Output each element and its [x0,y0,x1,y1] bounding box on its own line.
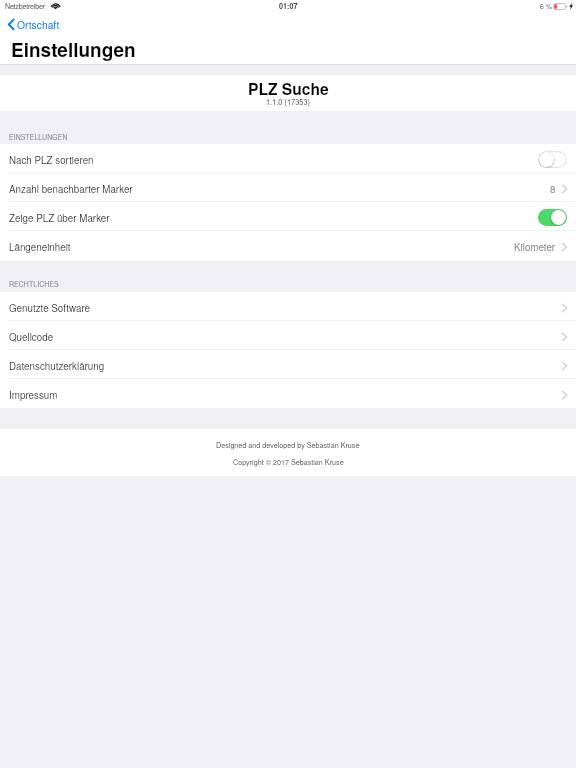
staticText: Datenschutzerklärung [9,359,105,373]
button[interactable]: Längeneinheit [0,231,576,260]
staticText: Zeige PLZ über Marker [9,211,110,225]
staticText: Designed and developed by Sebastian Krus… [216,440,360,450]
button[interactable]: Genutzte Software [0,292,576,321]
button[interactable]: Nach PLZ sortieren [0,144,576,173]
staticText: Copyright © 2017 Sebastian Kruse [233,457,344,467]
staticText: Quellcode [9,330,54,344]
staticText: 01:07 [279,1,298,11]
staticText: 1.1.0 (17353) [266,97,310,108]
staticText: Längeneinheit [9,240,71,254]
staticText: EINSTELLUNGEN [9,132,68,142]
staticText: RECHTLICHES [9,279,59,289]
staticText: Genutzte Software [9,301,90,315]
staticText: Kilometer [514,240,556,254]
button[interactable]: Ortschaft [4,15,66,34]
staticText: 6 % [540,1,553,11]
button[interactable]: Datenschutzerklärung [0,350,576,379]
button[interactable]: Zeige PLZ über Marker [0,202,576,231]
staticText: Einstellungen [11,36,136,63]
button[interactable]: Switch on [538,209,567,226]
staticText: Impressum [9,388,58,402]
staticText: Anzahl benachbarter Marker [9,182,133,196]
button[interactable]: Switch off [538,151,567,168]
staticText: Ortschaft [17,17,60,32]
button[interactable]: Quellcode [0,321,576,350]
staticText: Netzbetreiber [5,1,45,11]
staticText: PLZ Suche [248,77,329,99]
button[interactable]: Anzahl benachbarter Marker [0,173,576,202]
staticText: Nach PLZ sortieren [9,153,94,167]
button[interactable]: Impressum [0,379,576,408]
staticText: 8 [550,182,556,196]
